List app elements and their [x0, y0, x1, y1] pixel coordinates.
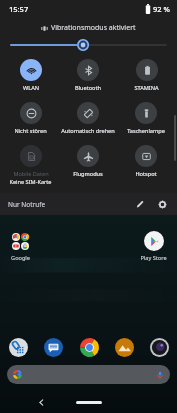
button[interactable]: Google [10, 231, 30, 262]
staticText: Play Store [140, 254, 167, 262]
staticText: Nur Notrufe [8, 200, 46, 209]
button[interactable]: Bluetooth [74, 58, 102, 93]
button[interactable]: WLAN [19, 58, 43, 93]
button[interactable]: Play Store [140, 231, 167, 262]
button[interactable]: Kamera [148, 336, 170, 358]
button[interactable]: Startbildschirm [76, 401, 102, 404]
button[interactable]: Taschenlampe [126, 101, 166, 136]
button[interactable] [0, 39, 177, 51]
staticText: Mobile Daten [13, 170, 49, 178]
staticText: Bluetooth [75, 84, 101, 92]
staticText: STAMINA [134, 84, 159, 92]
button[interactable] [7, 365, 170, 384]
button[interactable]: Nachrichten [42, 336, 64, 358]
button[interactable]: Bearbeiten [132, 196, 148, 212]
button[interactable]: Nicht stören [13, 101, 48, 136]
button[interactable]: Zurück [34, 395, 48, 409]
staticText: Nicht stören [14, 127, 47, 135]
staticText: Keine SIM-Karte [9, 178, 52, 186]
staticText: Flugmodus [73, 170, 103, 178]
button[interactable]: Telefon [7, 336, 29, 358]
button[interactable]: STAMINA [133, 58, 160, 93]
staticText: Google [11, 254, 30, 262]
button[interactable]: Mobile Daten [8, 144, 53, 187]
staticText: 15:57 [9, 4, 29, 14]
button[interactable]: Automatisch drehen [60, 101, 116, 136]
button[interactable]: Flugmodus [72, 144, 104, 179]
staticText: Vibrationsmodus aktiviert [51, 23, 136, 33]
staticText: Taschenlampe [127, 127, 165, 135]
staticText: Automatisch drehen [61, 127, 115, 135]
button[interactable]: Galerie [113, 336, 135, 358]
button[interactable]: Hotspot [134, 144, 158, 179]
staticText: Hotspot [135, 170, 157, 178]
staticText: WLAN [23, 84, 39, 92]
button[interactable]: Einstellungen [154, 196, 170, 212]
button[interactable]: Chrome [78, 336, 100, 358]
staticText: 92 % [153, 4, 170, 14]
